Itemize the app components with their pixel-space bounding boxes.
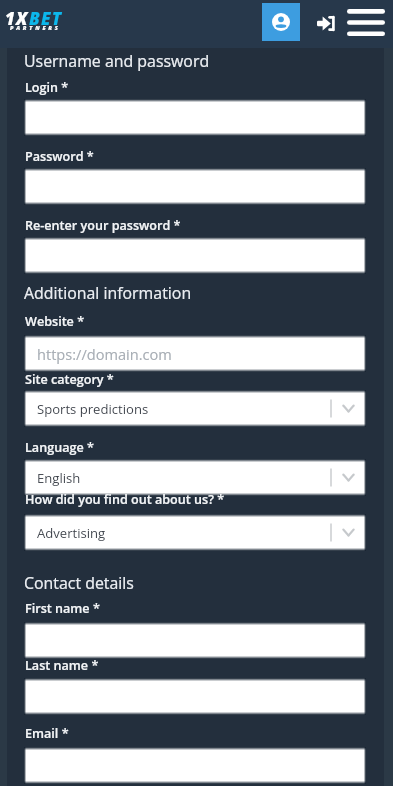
button[interactable] — [24, 678, 366, 715]
button[interactable] — [24, 622, 366, 659]
staticText: Last name * — [25, 657, 99, 674]
staticText: How did you find out about us? * — [25, 491, 225, 508]
button[interactable]: Menu — [343, 3, 389, 41]
staticText: Username and password — [24, 50, 210, 72]
staticText: First name * — [25, 600, 100, 617]
staticText: English — [37, 469, 81, 487]
staticText: Password * — [25, 148, 94, 165]
staticText: Advertising — [37, 524, 106, 542]
button[interactable] — [24, 747, 366, 784]
staticText: PARTNERS — [10, 24, 61, 32]
staticText: Email * — [25, 725, 69, 742]
staticText: Language * — [25, 439, 94, 456]
button[interactable] — [24, 168, 366, 205]
button[interactable]: https://domain.com — [24, 335, 366, 372]
staticText: Site category * — [25, 371, 114, 388]
button[interactable]: English — [24, 459, 366, 496]
staticText: https://domain.com — [37, 344, 172, 364]
staticText: Sports predictions — [37, 400, 149, 418]
staticText: Re-enter your password * — [25, 217, 181, 234]
staticText: Contact details — [24, 572, 134, 594]
button[interactable]: Log in — [313, 11, 338, 36]
staticText: Additional information — [24, 282, 192, 304]
button[interactable] — [24, 99, 366, 136]
button[interactable]: Advertising — [24, 514, 366, 551]
staticText: 1X — [5, 7, 29, 30]
staticText: Login * — [25, 79, 69, 96]
staticText: Website * — [25, 313, 85, 330]
button[interactable]: Sports predictions — [24, 390, 366, 427]
button[interactable]: Account — [262, 3, 300, 41]
button[interactable] — [24, 237, 366, 274]
staticText: BET — [29, 7, 63, 30]
